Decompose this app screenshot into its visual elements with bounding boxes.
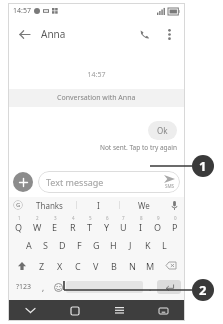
button[interactable]: Enter — [157, 280, 181, 294]
staticText: 2 — [36, 215, 39, 221]
staticText: V — [93, 260, 99, 272]
staticText: Z — [39, 260, 45, 272]
button[interactable]: Voice input — [168, 199, 180, 211]
staticText: 14:57 — [13, 6, 31, 16]
staticText: 1 — [199, 157, 207, 175]
staticText: I — [139, 221, 143, 233]
staticText: M — [146, 260, 155, 272]
button[interactable]: We — [120, 200, 168, 211]
staticText: , — [42, 282, 45, 293]
button[interactable]: A — [20, 234, 37, 255]
staticText: A — [26, 239, 32, 251]
staticText: W — [33, 221, 42, 233]
staticText: O — [154, 221, 162, 233]
button[interactable]: H — [105, 234, 122, 255]
staticText: 9 — [157, 215, 160, 221]
button[interactable]: 6 — [98, 213, 115, 234]
staticText: 14:57 — [8, 70, 185, 80]
staticText: 7 — [122, 215, 125, 221]
staticText: Not sent. Tap to try again — [100, 143, 177, 152]
button[interactable]: Call — [136, 25, 154, 43]
button[interactable]: Back — [15, 25, 33, 43]
staticText: D — [59, 239, 66, 251]
staticText: Ok — [157, 125, 168, 136]
button[interactable]: 5 — [81, 213, 98, 234]
staticText: Anna — [41, 27, 66, 41]
staticText: E — [52, 221, 58, 233]
button[interactable]: 2 — [28, 213, 46, 234]
staticText: . — [149, 282, 152, 293]
button[interactable]: Google — [13, 200, 23, 210]
staticText: P — [172, 221, 178, 233]
button[interactable]: . — [143, 276, 157, 298]
staticText: J — [129, 239, 132, 251]
staticText: Q — [15, 221, 23, 233]
staticText: T — [87, 221, 93, 233]
button[interactable]: 1 — [10, 213, 28, 234]
button[interactable]: Backspace — [159, 255, 182, 276]
staticText: G — [93, 239, 100, 251]
staticText: L — [162, 239, 167, 251]
staticText: B — [111, 260, 117, 272]
staticText: 5 — [89, 215, 92, 221]
staticText: 1 — [18, 215, 21, 221]
staticText: Thanks — [36, 200, 63, 211]
staticText: H — [110, 239, 117, 251]
staticText: C — [75, 260, 81, 272]
staticText: Conversation with Anna — [57, 93, 136, 103]
staticText: I — [97, 200, 100, 211]
button[interactable]: 9 — [149, 213, 166, 234]
staticText: X — [57, 260, 63, 272]
staticText: U — [120, 221, 127, 233]
button[interactable]: D — [54, 234, 71, 255]
button[interactable]: N — [123, 255, 141, 276]
button[interactable]: Switch keyboard — [141, 300, 185, 321]
button[interactable]: I — [77, 200, 119, 211]
button[interactable]: 3 — [46, 213, 64, 234]
staticText: K — [145, 239, 151, 251]
button[interactable]: Not sent. Tap to try again — [8, 143, 177, 152]
button[interactable]: Add attachment — [13, 172, 33, 192]
button[interactable]: F — [71, 234, 88, 255]
button[interactable]: Shift — [11, 255, 33, 276]
button[interactable]: Home — [53, 300, 97, 321]
button[interactable]: More options — [160, 25, 178, 43]
staticText: 0 — [174, 215, 177, 221]
button[interactable]: Ok — [148, 121, 177, 140]
button[interactable]: J — [122, 234, 139, 255]
button[interactable]: , — [36, 276, 50, 298]
button[interactable]: 4 — [64, 213, 81, 234]
staticText: 3 — [54, 215, 57, 221]
button[interactable]: Hide keyboard — [8, 300, 53, 321]
button[interactable]: B — [105, 255, 123, 276]
button[interactable]: S — [37, 234, 54, 255]
staticText: ?123 — [16, 282, 32, 292]
staticText: 8 — [140, 215, 143, 221]
button[interactable]: L — [156, 234, 173, 255]
button[interactable]: Emoji — [50, 276, 66, 298]
button[interactable]: X — [51, 255, 69, 276]
button[interactable]: Text message — [38, 171, 180, 193]
button[interactable]: Thanks — [23, 200, 76, 211]
staticText: 4 — [72, 215, 75, 221]
button[interactable]: Space — [66, 281, 143, 293]
staticText: 6 — [106, 215, 109, 221]
button[interactable]: ?123 — [12, 276, 36, 298]
staticText: 2 — [199, 281, 207, 299]
button[interactable]: 7 — [115, 213, 132, 234]
button[interactable]: G — [88, 234, 105, 255]
button[interactable]: 8 — [132, 213, 149, 234]
staticText: S — [43, 239, 48, 251]
staticText: Y — [104, 221, 110, 233]
button[interactable]: K — [139, 234, 156, 255]
staticText: SMS — [165, 183, 175, 189]
button[interactable]: M — [141, 255, 159, 276]
button[interactable]: C — [69, 255, 87, 276]
button[interactable]: V — [87, 255, 105, 276]
button[interactable]: Z — [33, 255, 51, 276]
staticText: Text message — [46, 176, 104, 188]
button[interactable]: Recent apps — [97, 300, 141, 321]
staticText: R — [70, 221, 76, 233]
button[interactable]: 0 — [166, 213, 183, 234]
staticText: F — [77, 239, 82, 251]
